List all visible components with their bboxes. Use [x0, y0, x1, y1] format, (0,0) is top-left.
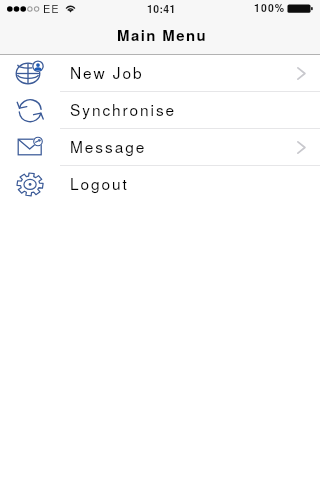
staticText: Message — [70, 135, 147, 157]
button[interactable]: Synchronise — [0, 92, 320, 129]
other: Synchronise — [11, 94, 45, 128]
other: Logout — [11, 168, 45, 202]
staticText: 10:41 — [147, 1, 176, 16]
staticText: Main Menu — [117, 24, 208, 45]
other: Message — [11, 131, 45, 165]
button[interactable]: Logout — [0, 166, 320, 203]
staticText: Synchronise — [70, 98, 177, 120]
button[interactable]: Message — [0, 129, 320, 166]
staticText: Logout — [70, 172, 129, 194]
other: New Job — [11, 57, 45, 91]
staticText: New Job — [70, 61, 144, 83]
staticText: EE — [43, 0, 60, 16]
staticText: 100% — [254, 0, 286, 15]
button[interactable]: New Job — [0, 55, 320, 92]
